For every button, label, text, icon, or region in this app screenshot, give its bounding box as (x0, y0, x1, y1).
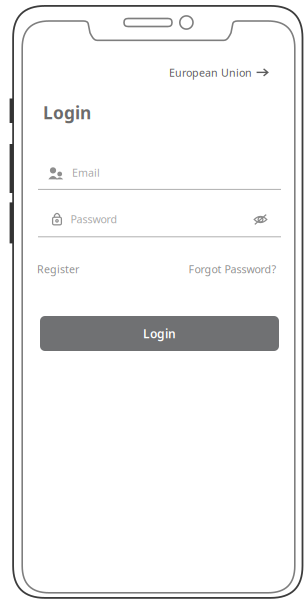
button[interactable]: Show password (249, 209, 271, 230)
button[interactable]: Login (40, 316, 279, 351)
button[interactable]: Register (35, 259, 81, 279)
staticText: Login (43, 101, 91, 124)
staticText: European Union (169, 65, 252, 80)
staticText: Register (37, 262, 79, 276)
staticText: Email (72, 165, 100, 180)
staticText: Password (70, 212, 117, 226)
staticText: Login (143, 325, 176, 341)
button[interactable]: Forgot Password? (186, 259, 278, 279)
button[interactable]: European Union (167, 61, 271, 84)
staticText: Forgot Password? (188, 262, 276, 276)
